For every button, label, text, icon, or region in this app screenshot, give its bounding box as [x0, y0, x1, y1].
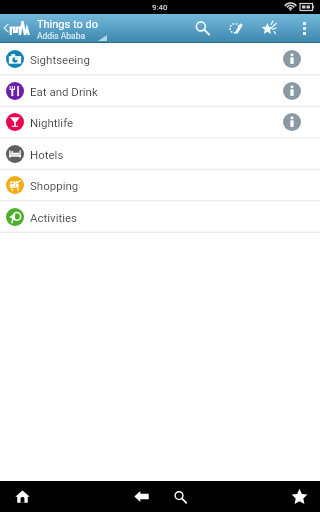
- staticText: Addis Ababa: [37, 31, 86, 41]
- button[interactable]: Search: [186, 14, 218, 42]
- button[interactable]: Search: [164, 481, 196, 512]
- button[interactable]: Eat and Drink: [0, 75, 320, 107]
- staticText: Nightlife: [30, 116, 74, 129]
- button[interactable]: Activities: [0, 201, 320, 233]
- staticText: Hotels: [30, 148, 64, 161]
- staticText: Things to do: [37, 18, 98, 31]
- button[interactable]: Edit route: [220, 14, 252, 42]
- button[interactable]: More options: [288, 14, 320, 42]
- button[interactable]: Shopping: [0, 169, 320, 201]
- button[interactable]: Hotels: [0, 138, 320, 170]
- staticText: Shopping: [30, 179, 79, 192]
- button[interactable]: Back: [125, 481, 157, 512]
- button[interactable]: Nightlife: [0, 106, 320, 138]
- button[interactable]: Up: [0, 14, 35, 42]
- staticText: Eat and Drink: [30, 85, 98, 98]
- button[interactable]: Info about Eat and Drink: [279, 76, 305, 106]
- button[interactable]: Things to do: [37, 14, 187, 42]
- button[interactable]: Info about Nightlife: [279, 107, 305, 137]
- staticText: Activities: [30, 211, 78, 224]
- button[interactable]: Info about Sightseeing: [279, 44, 305, 74]
- staticText: 9:40: [152, 3, 168, 12]
- button[interactable]: Favourites: [253, 14, 285, 42]
- button[interactable]: Sightseeing: [0, 43, 320, 75]
- staticText: Sightseeing: [30, 53, 90, 66]
- button[interactable]: Favourites: [283, 481, 315, 512]
- button[interactable]: Home: [6, 481, 38, 512]
